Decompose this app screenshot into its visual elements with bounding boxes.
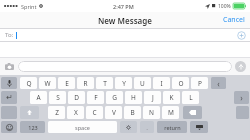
staticText: Y <box>122 79 126 88</box>
button[interactable] <box>18 61 232 72</box>
button[interactable]: D <box>68 91 85 104</box>
staticText: J <box>152 93 154 102</box>
button[interactable]: Z <box>48 106 65 119</box>
staticText: D <box>74 93 79 102</box>
staticText: ‹ <box>217 78 220 89</box>
staticText: Q <box>26 79 32 88</box>
staticText: return <box>164 124 181 131</box>
button[interactable]: Q <box>20 77 37 89</box>
button[interactable]: Previous <box>211 77 226 89</box>
button[interactable]: Cancel <box>221 14 247 26</box>
button[interactable]: M <box>162 106 179 119</box>
button[interactable]: return <box>157 121 187 133</box>
staticText: New Message <box>98 15 152 26</box>
button[interactable]: Settings <box>120 121 137 133</box>
button[interactable]: I <box>153 77 170 89</box>
staticText: F <box>94 93 98 102</box>
button[interactable]: C <box>86 106 103 119</box>
staticText: G <box>112 93 117 102</box>
button[interactable]: Next <box>234 91 249 104</box>
button[interactable]: Hide keyboard <box>190 121 208 133</box>
staticText: 123 <box>28 124 38 131</box>
button[interactable]: R <box>77 77 94 89</box>
staticText: ↵ <box>6 93 13 102</box>
button[interactable]: P <box>191 77 208 89</box>
button[interactable]: S <box>49 91 66 104</box>
staticText: Cancel <box>223 15 245 25</box>
staticText: T <box>103 79 107 88</box>
staticText: C <box>92 108 97 117</box>
staticText: To: <box>5 31 14 39</box>
button[interactable]: space <box>48 121 117 133</box>
staticText: S <box>56 93 60 102</box>
button[interactable]: H <box>125 91 142 104</box>
button[interactable]: Undo <box>1 91 17 104</box>
button[interactable]: U <box>134 77 151 89</box>
button[interactable]: W <box>39 77 56 89</box>
staticText: 100% <box>218 3 231 10</box>
staticText: K <box>169 93 174 102</box>
staticText: H <box>131 93 136 102</box>
button[interactable]: T <box>96 77 113 89</box>
button[interactable]: Camera <box>4 61 15 72</box>
button[interactable]: G <box>106 91 123 104</box>
staticText: 2:47 PM <box>113 3 134 10</box>
staticText: Z <box>55 108 59 117</box>
staticText: Sprint <box>21 3 37 10</box>
button[interactable]: E <box>58 77 75 89</box>
button[interactable]: Y <box>115 77 132 89</box>
staticText: B <box>130 108 135 117</box>
button[interactable]: 123 <box>20 121 45 133</box>
button[interactable]: J <box>144 91 161 104</box>
button[interactable]: Shift <box>20 106 39 119</box>
staticText: L <box>189 93 193 102</box>
button[interactable]: L <box>182 91 199 104</box>
staticText: space <box>75 124 90 131</box>
button[interactable]: Emoji <box>1 121 17 133</box>
staticText: W <box>44 79 51 88</box>
staticText: X <box>74 108 78 117</box>
button[interactable]: B <box>124 106 141 119</box>
staticText: P <box>198 79 202 88</box>
button[interactable]: O <box>172 77 189 89</box>
button[interactable]: Dictation <box>1 77 17 89</box>
staticText: › <box>240 92 243 103</box>
staticText: V <box>112 108 116 117</box>
staticText: E <box>65 79 69 88</box>
button[interactable]: V <box>105 106 122 119</box>
button[interactable]: Add contact <box>237 31 246 40</box>
staticText: . <box>146 123 148 132</box>
staticText: R <box>83 79 88 88</box>
staticText: N <box>149 108 154 117</box>
button[interactable]: N <box>143 106 160 119</box>
button[interactable]: A <box>30 91 47 104</box>
staticText: I <box>160 79 163 88</box>
button[interactable]: F <box>87 91 104 104</box>
button[interactable]: Send <box>235 61 246 72</box>
staticText: O <box>178 79 184 88</box>
staticText: A <box>36 93 41 102</box>
staticText: M <box>168 108 174 117</box>
button[interactable]: X <box>67 106 84 119</box>
button[interactable]: K <box>163 91 180 104</box>
staticText: U <box>140 79 145 88</box>
button[interactable]: Backspace <box>183 106 202 119</box>
